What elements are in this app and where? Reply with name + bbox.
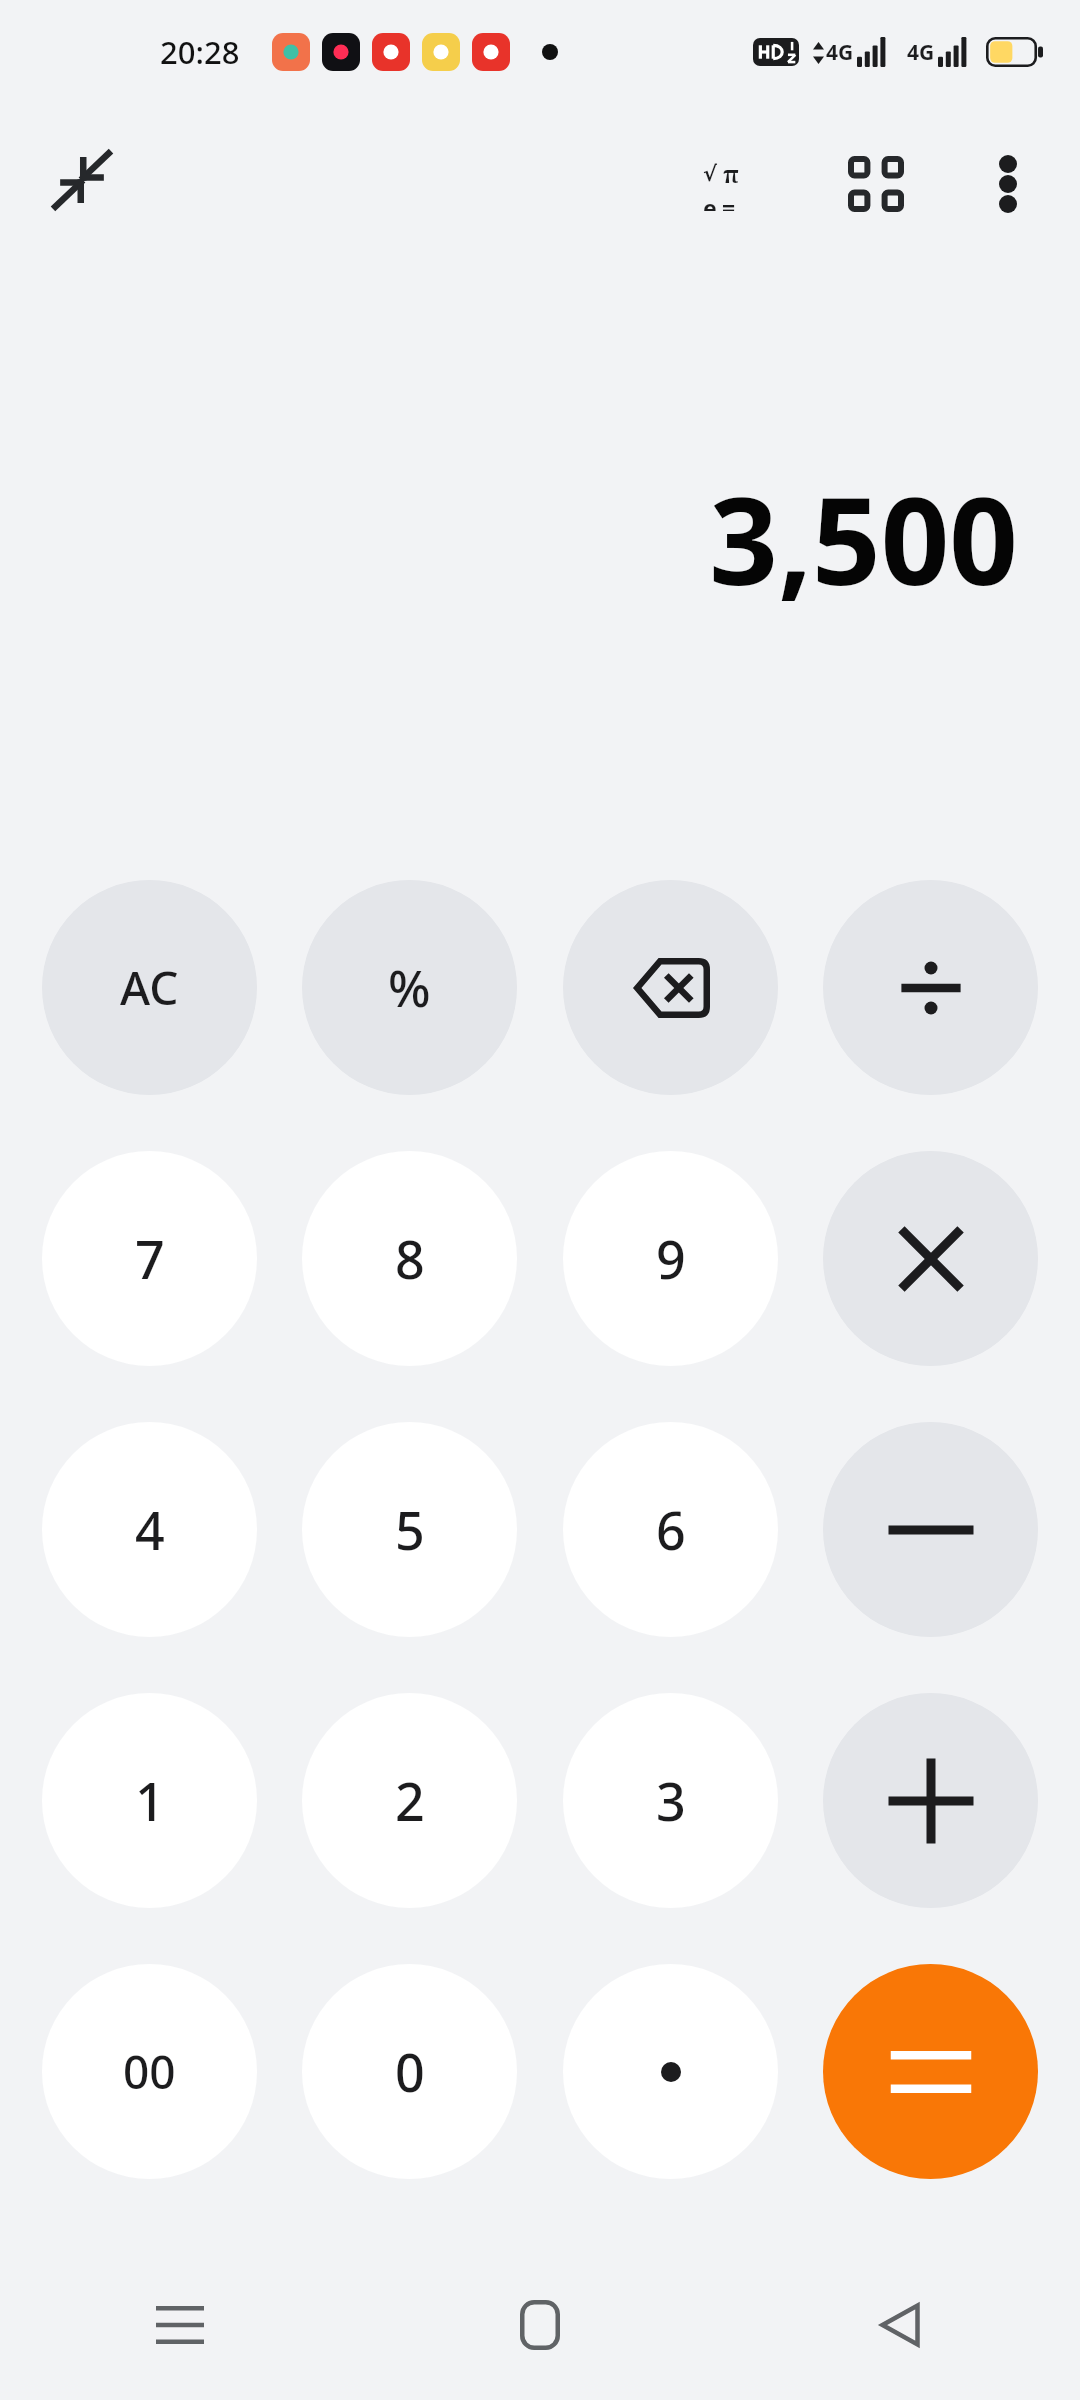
button[interactable]: Home <box>360 2250 720 2400</box>
staticText: 2 <box>395 1765 425 1836</box>
staticText: 8 <box>395 1223 425 1294</box>
button[interactable]: Collapse <box>38 136 126 224</box>
button[interactable]: Scientific functions <box>686 136 782 232</box>
button[interactable]: Back <box>720 2250 1080 2400</box>
button[interactable]: Divide <box>823 880 1038 1095</box>
staticText: 4 <box>135 1494 165 1565</box>
button[interactable]: More options <box>960 136 1056 232</box>
button[interactable]: % <box>302 880 517 1095</box>
staticText: 5 <box>395 1494 425 1565</box>
staticText: = <box>722 192 736 211</box>
staticText: % <box>388 954 431 1022</box>
button[interactable]: 00 <box>42 1964 257 2179</box>
button[interactable]: AC <box>42 880 257 1095</box>
button[interactable]: 3 <box>563 1693 778 1908</box>
staticText: 6 <box>656 1494 686 1565</box>
staticText: 3 <box>656 1765 686 1836</box>
button[interactable]: Recent apps <box>0 2250 360 2400</box>
button[interactable]: 6 <box>563 1422 778 1637</box>
button[interactable]: 1 <box>42 1693 257 1908</box>
staticText: 1 <box>135 1765 165 1836</box>
button[interactable]: 0 <box>302 1964 517 2179</box>
staticText: e <box>703 192 717 211</box>
button[interactable]: Multiply <box>823 1151 1038 1366</box>
staticText: π <box>723 157 739 190</box>
staticText: AC <box>120 956 179 1019</box>
staticText: 7 <box>135 1223 165 1294</box>
button[interactable]: 7 <box>42 1151 257 1366</box>
button[interactable]: 2 <box>302 1693 517 1908</box>
button[interactable]: Unit converter <box>828 136 924 232</box>
button[interactable]: Backspace <box>563 880 778 1095</box>
button[interactable]: 5 <box>302 1422 517 1637</box>
staticText: 00 <box>123 2040 176 2103</box>
button[interactable]: Equals <box>823 1964 1038 2179</box>
button[interactable]: Subtract <box>823 1422 1038 1637</box>
button[interactable]: 9 <box>563 1151 778 1366</box>
staticText: 4G <box>907 38 935 67</box>
button[interactable]: 4 <box>42 1422 257 1637</box>
staticText: 0 <box>395 2036 425 2107</box>
staticText: √ <box>703 162 718 186</box>
button[interactable]: Decimal point <box>563 1964 778 2179</box>
button[interactable]: 8 <box>302 1151 517 1366</box>
staticText: 3,500 <box>709 457 1018 620</box>
button[interactable]: Add <box>823 1693 1038 1908</box>
staticText: 4G <box>826 38 854 67</box>
staticText: 9 <box>656 1223 686 1294</box>
staticText: 20:28 <box>160 31 240 73</box>
